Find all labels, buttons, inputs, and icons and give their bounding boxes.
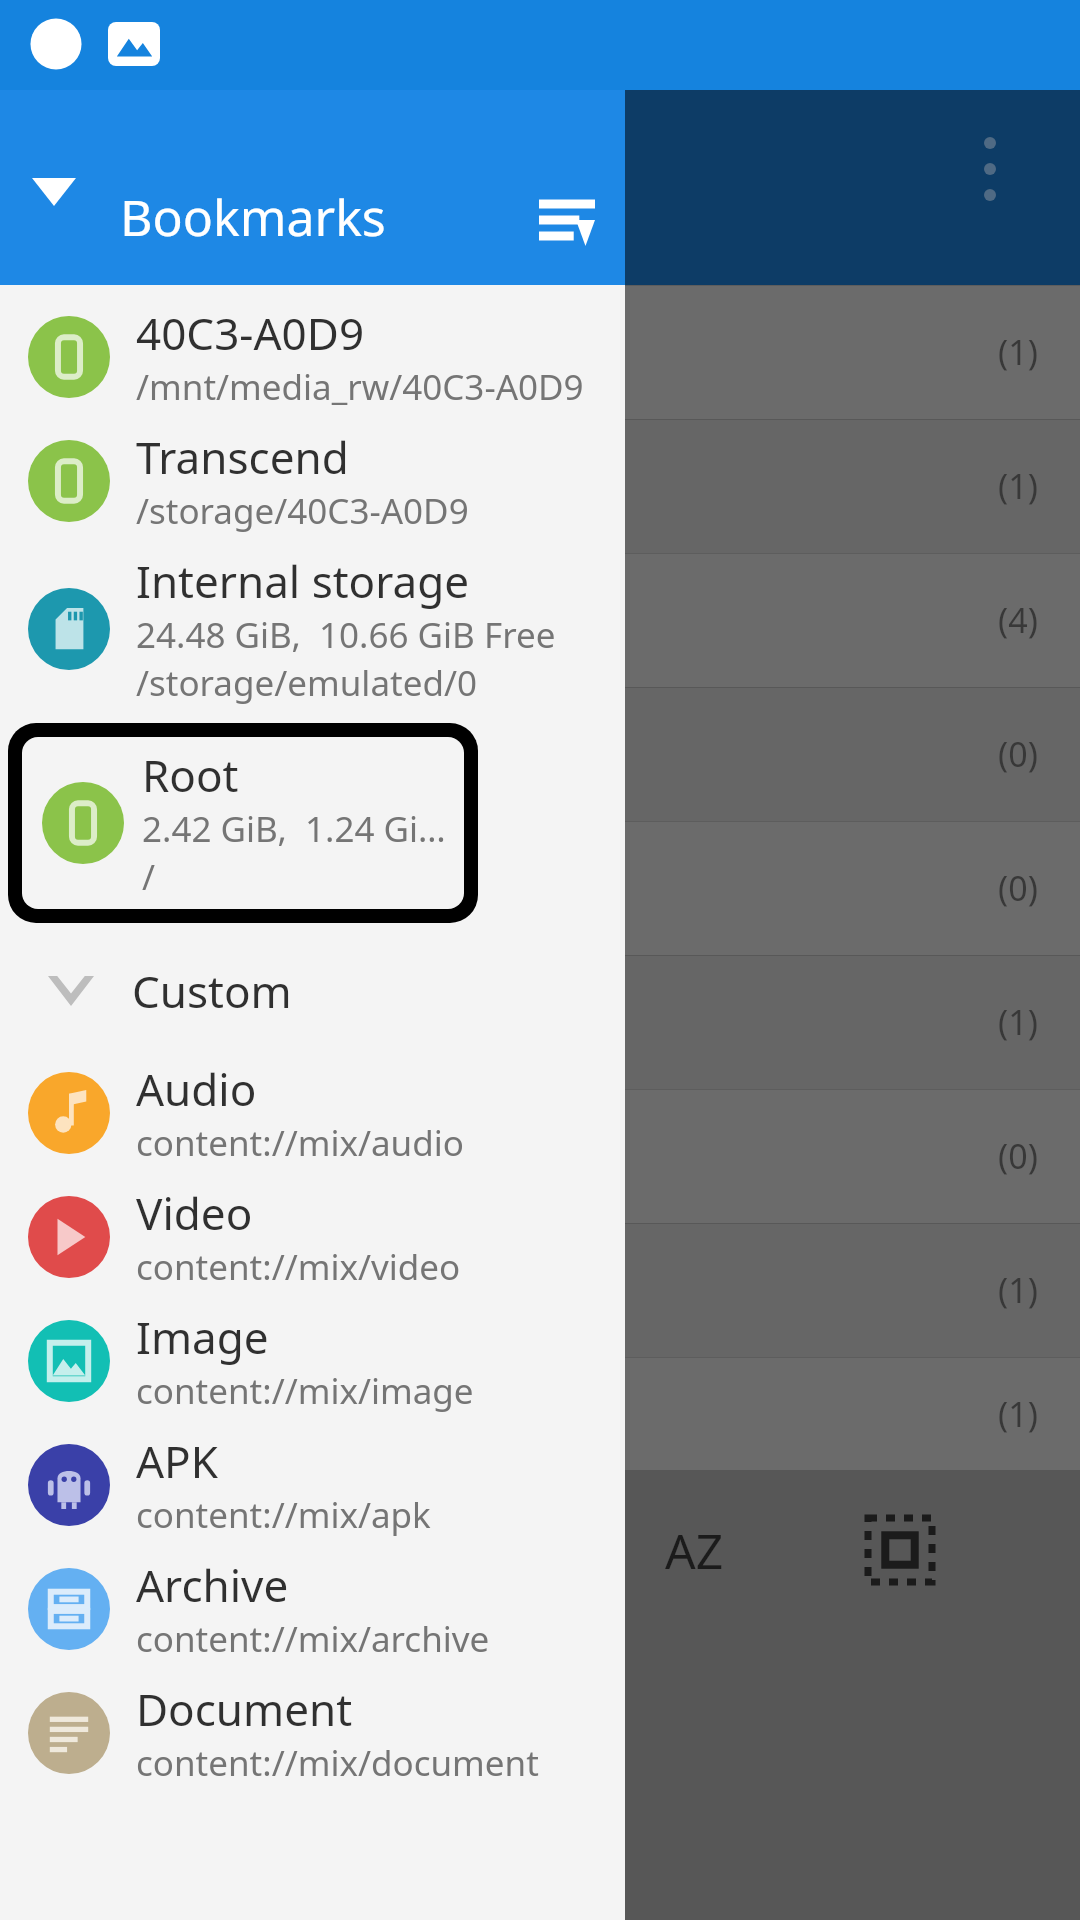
button[interactable]: (1) bbox=[625, 419, 1080, 553]
staticText: (1) bbox=[998, 1267, 1038, 1313]
button[interactable]: AZ bbox=[665, 1518, 724, 1583]
staticText: / bbox=[142, 853, 156, 901]
button[interactable]: Sort bbox=[525, 180, 609, 264]
button[interactable]: Document bbox=[0, 1671, 625, 1795]
button[interactable]: (4) bbox=[625, 553, 1080, 687]
button[interactable]: Audio bbox=[0, 1051, 625, 1175]
staticText: (1) bbox=[998, 329, 1038, 375]
staticText: Custom bbox=[132, 961, 292, 1021]
button[interactable]: Select bbox=[860, 1510, 940, 1590]
button[interactable]: (0) bbox=[625, 687, 1080, 821]
staticText: content://mix/audio bbox=[136, 1119, 464, 1167]
button[interactable]: (1) bbox=[625, 955, 1080, 1089]
button[interactable]: Archive bbox=[0, 1547, 625, 1671]
staticText: 24.48 GiB, 10.66 GiB Free bbox=[136, 611, 556, 659]
button[interactable]: Root bbox=[22, 737, 464, 909]
staticText: (1) bbox=[998, 1391, 1038, 1437]
button[interactable]: (0) bbox=[625, 821, 1080, 955]
button[interactable]: Transcend bbox=[0, 419, 625, 543]
staticText: 2.42 GiB, 1.24 GiB Free bbox=[142, 805, 464, 853]
button[interactable]: (1) bbox=[625, 1223, 1080, 1357]
button[interactable]: Video bbox=[0, 1175, 625, 1299]
staticText: Archive bbox=[136, 1555, 289, 1615]
button[interactable]: Image bbox=[0, 1299, 625, 1423]
button[interactable]: (0) bbox=[625, 1089, 1080, 1223]
button[interactable]: More options bbox=[960, 115, 1020, 225]
staticText: (1) bbox=[998, 463, 1038, 509]
staticText: APK bbox=[136, 1431, 218, 1491]
button[interactable]: Internal storage bbox=[0, 543, 625, 715]
staticText: content://mix/archive bbox=[136, 1615, 490, 1663]
staticText: content://mix/video bbox=[136, 1243, 461, 1291]
button[interactable]: Custom bbox=[0, 931, 625, 1051]
staticText: Audio bbox=[136, 1059, 257, 1119]
staticText: content://mix/image bbox=[136, 1367, 474, 1415]
button[interactable]: Collapse bbox=[12, 150, 96, 234]
staticText: Internal storage bbox=[136, 551, 470, 611]
staticText: 40C3-A0D9 bbox=[136, 303, 365, 363]
staticText: Video bbox=[136, 1183, 253, 1243]
staticText: (0) bbox=[998, 731, 1038, 777]
staticText: Image bbox=[136, 1307, 269, 1367]
staticText: /mnt/media_rw/40C3-A0D9 bbox=[136, 363, 584, 411]
staticText: (0) bbox=[998, 865, 1038, 911]
staticText: Root bbox=[142, 745, 239, 805]
staticText: (1) bbox=[998, 999, 1038, 1045]
staticText: /storage/emulated/0 bbox=[136, 659, 477, 707]
button[interactable]: 40C3-A0D9 bbox=[0, 295, 625, 419]
staticText: content://mix/apk bbox=[136, 1491, 431, 1539]
staticText: Document bbox=[136, 1679, 353, 1739]
button[interactable]: (1) bbox=[625, 285, 1080, 419]
staticText: (0) bbox=[998, 1133, 1038, 1179]
staticText: /storage/40C3-A0D9 bbox=[136, 487, 469, 535]
button[interactable]: (1) bbox=[625, 1357, 1080, 1470]
staticText: Transcend bbox=[136, 427, 349, 487]
staticText: (4) bbox=[998, 597, 1038, 643]
staticText: Bookmarks bbox=[120, 183, 386, 251]
button[interactable]: APK bbox=[0, 1423, 625, 1547]
staticText: content://mix/document bbox=[136, 1739, 539, 1787]
